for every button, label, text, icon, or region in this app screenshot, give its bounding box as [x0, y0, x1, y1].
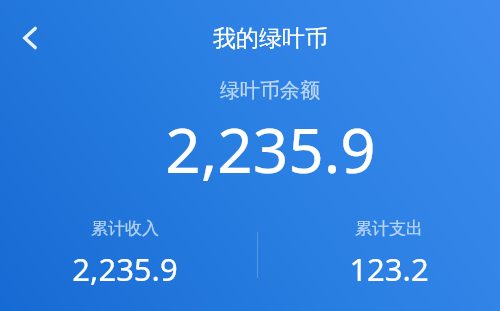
staticText: 绿叶币余额: [220, 78, 320, 103]
staticText: 123.2: [349, 248, 429, 290]
button[interactable]: Back: [7, 15, 53, 61]
staticText: 2,235.9: [72, 248, 178, 290]
staticText: 2,235.9: [165, 107, 376, 191]
button[interactable]: 累计收入: [65, 218, 185, 290]
button[interactable]: 累计支出: [329, 218, 449, 290]
staticText: 我的绿叶币: [213, 24, 328, 53]
staticText: 累计支出: [355, 218, 423, 239]
staticText: 累计收入: [91, 218, 159, 239]
